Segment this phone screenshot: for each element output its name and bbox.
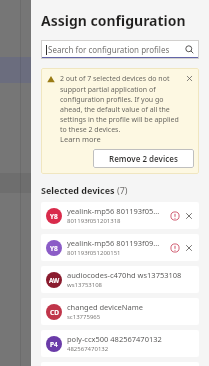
staticText: sc13775965 (67, 313, 101, 321)
button[interactable]: Y8 (41, 202, 199, 229)
button[interactable]: CD (41, 298, 199, 325)
button[interactable]: P4 (41, 330, 199, 357)
button[interactable]: Not supported (170, 211, 180, 221)
other: Search (185, 45, 194, 54)
button[interactable]: Search for configuration profiles (41, 40, 199, 59)
staticText: P4 (50, 340, 58, 349)
staticText: yealink-mp56 801193f05... (67, 206, 160, 216)
staticText: 482567470132 (67, 345, 109, 353)
staticText: Y8 (50, 244, 58, 253)
button[interactable]: AW (41, 266, 199, 293)
staticText: 801193f051200151 (67, 249, 121, 257)
button[interactable]: Not supported (170, 243, 180, 253)
staticText: AW (49, 276, 60, 285)
button[interactable]: Remove 2 devices (93, 149, 194, 168)
button[interactable]: Remove device (184, 211, 194, 221)
staticText: (7) (117, 184, 128, 196)
staticText: 801193f051201318 (67, 217, 121, 225)
staticText: 2 out of 7 selected devices do not suppo… (60, 74, 182, 134)
staticText: yealink-mp56 801193f09... (67, 238, 160, 248)
staticText: Y8 (50, 212, 58, 221)
button[interactable]: Dismiss warning (185, 74, 194, 83)
button[interactable]: Learn more (60, 134, 101, 144)
staticText: Selected devices (41, 184, 117, 196)
staticText: Search for configuration profiles (48, 44, 185, 55)
staticText: audiocodes-c470hd ws13753108 (67, 270, 182, 280)
staticText: Remove 2 devices (109, 153, 178, 164)
button[interactable]: Y8 (41, 234, 199, 261)
button[interactable]: Remove device (184, 243, 194, 253)
staticText: Assign configuration (41, 11, 186, 30)
staticText: changed deviceName (67, 302, 143, 312)
staticText: CD (50, 308, 59, 317)
staticText: poly-ccx500 482567470132 (67, 334, 162, 344)
staticText: ws13753108 (67, 281, 103, 289)
